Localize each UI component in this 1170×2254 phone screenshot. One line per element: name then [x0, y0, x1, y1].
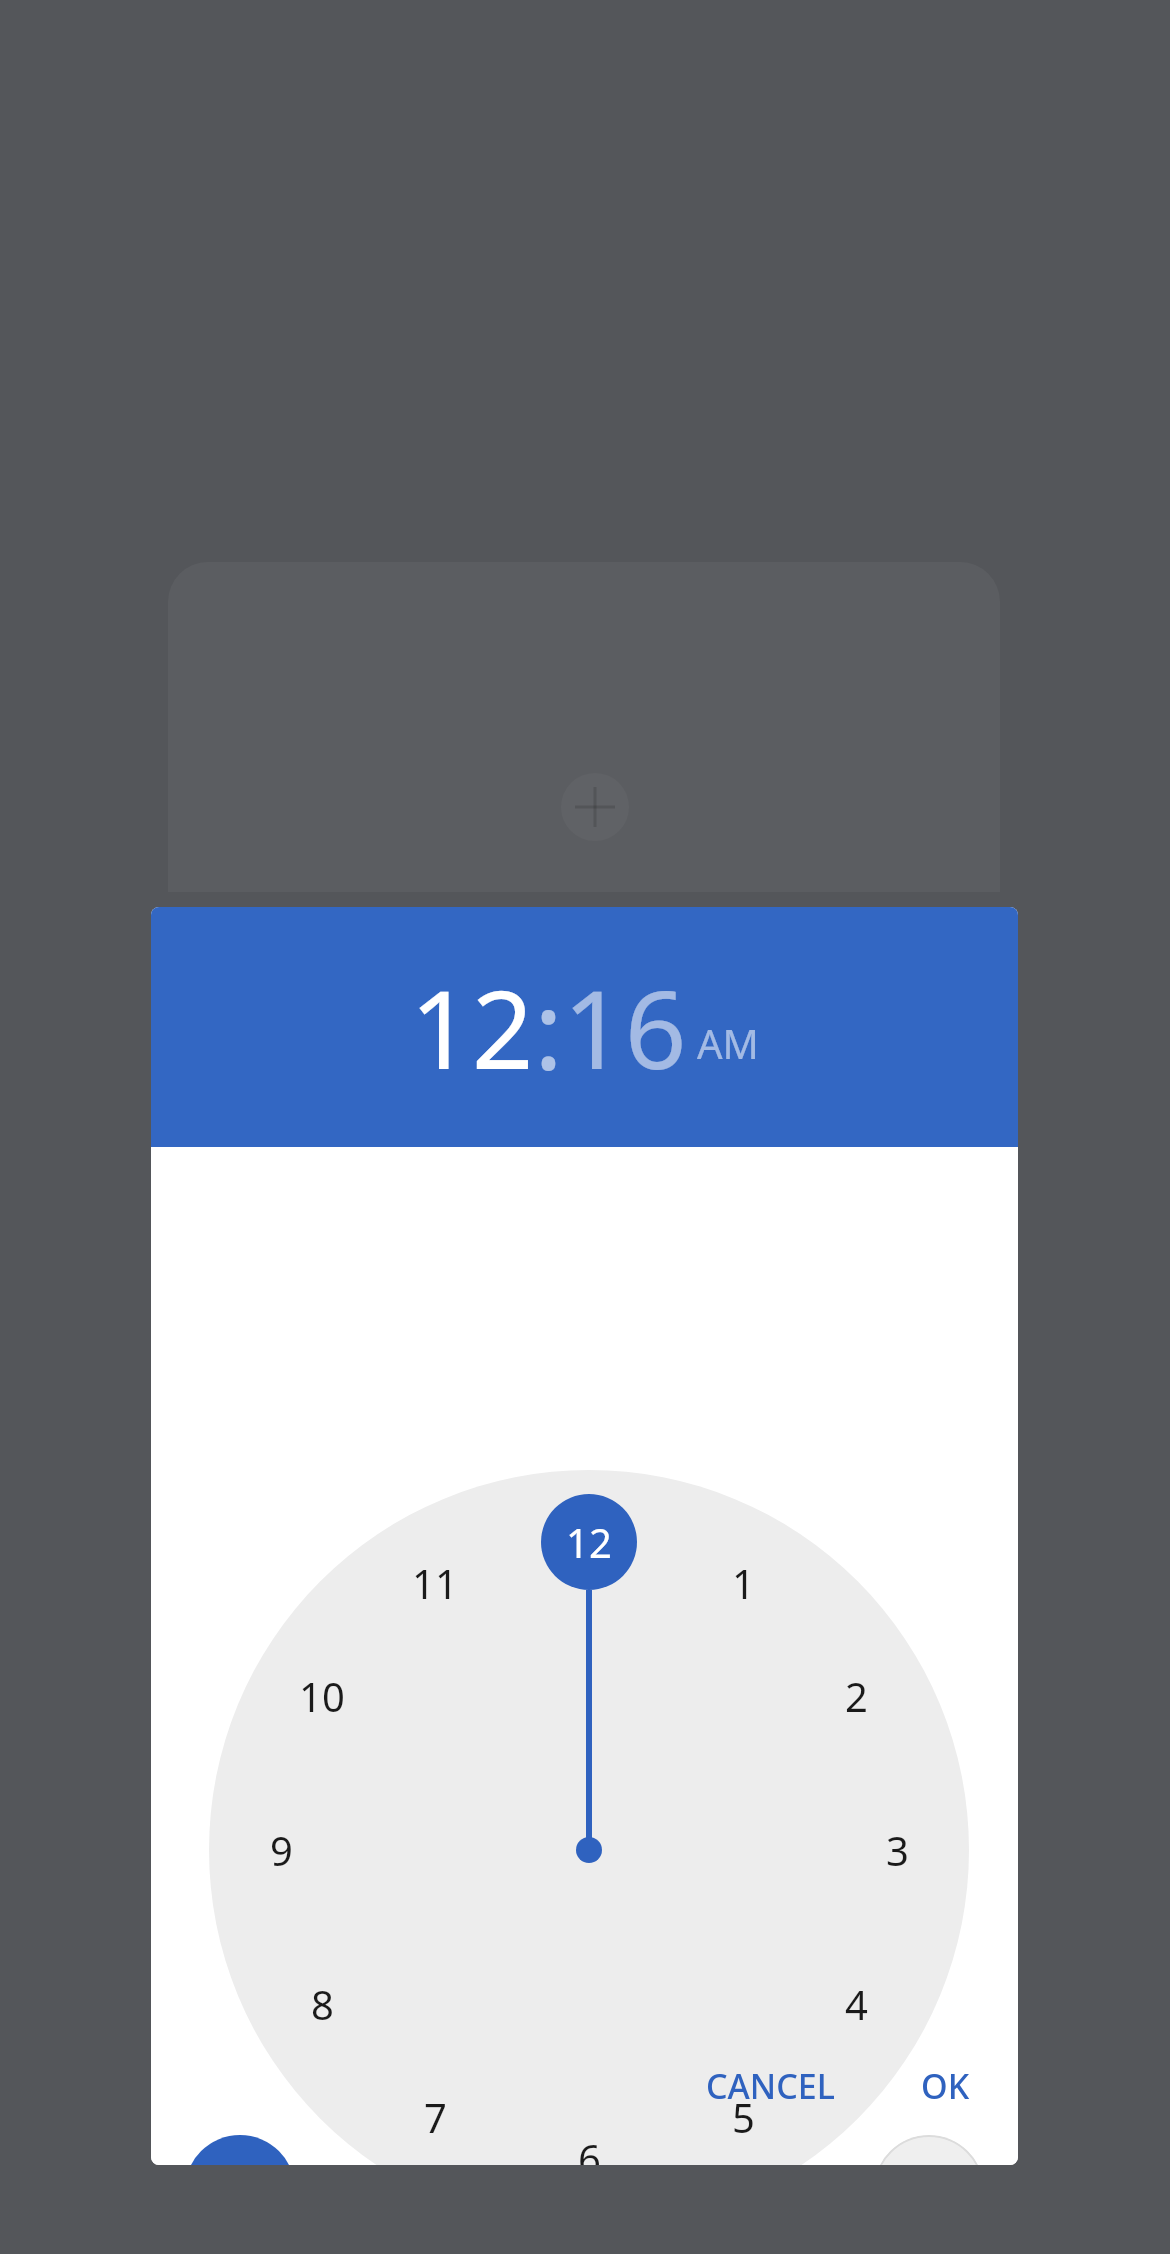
staticText: 5	[732, 2090, 755, 2144]
button[interactable]: 6	[541, 2110, 637, 2165]
button[interactable]: PM	[874, 2135, 984, 2165]
button[interactable]: 9	[233, 1802, 329, 1898]
button[interactable]: AM	[185, 2135, 295, 2165]
staticText: 11	[412, 1556, 458, 1610]
button[interactable]: Clock face, select hour	[151, 1147, 1018, 2165]
button[interactable]: 4	[808, 1956, 904, 2052]
staticText: 2	[845, 1669, 868, 1723]
button[interactable]: 12	[541, 1494, 637, 1590]
button[interactable]: AM	[697, 1016, 759, 1070]
button[interactable]: 1	[695, 1535, 791, 1631]
button[interactable]: OK	[899, 2047, 992, 2125]
button[interactable]: 5	[695, 2069, 791, 2165]
button[interactable]: 3	[849, 1802, 945, 1898]
button[interactable]: 7	[387, 2069, 483, 2165]
button[interactable]: 2	[808, 1648, 904, 1744]
staticText: OK	[921, 2063, 970, 2109]
staticText: 12	[566, 1515, 612, 1569]
button[interactable]: 8	[274, 1956, 370, 2052]
staticText: 9	[270, 1823, 293, 1877]
staticText: 10	[299, 1669, 345, 1723]
button[interactable]: 12	[410, 954, 534, 1101]
button[interactable]: CANCEL	[684, 2047, 857, 2125]
staticText: 3	[886, 1823, 909, 1877]
staticText: 8	[311, 1977, 334, 2031]
staticText: 4	[845, 1977, 868, 2031]
staticText: 7	[424, 2090, 447, 2144]
button[interactable]: 11	[387, 1535, 483, 1631]
staticText: CANCEL	[706, 2063, 835, 2109]
button[interactable]: 16	[563, 954, 687, 1101]
staticText: 6	[578, 2131, 601, 2165]
button[interactable]: 10	[274, 1648, 370, 1744]
staticText: :	[534, 954, 563, 1101]
staticText: 1	[732, 1556, 755, 1610]
